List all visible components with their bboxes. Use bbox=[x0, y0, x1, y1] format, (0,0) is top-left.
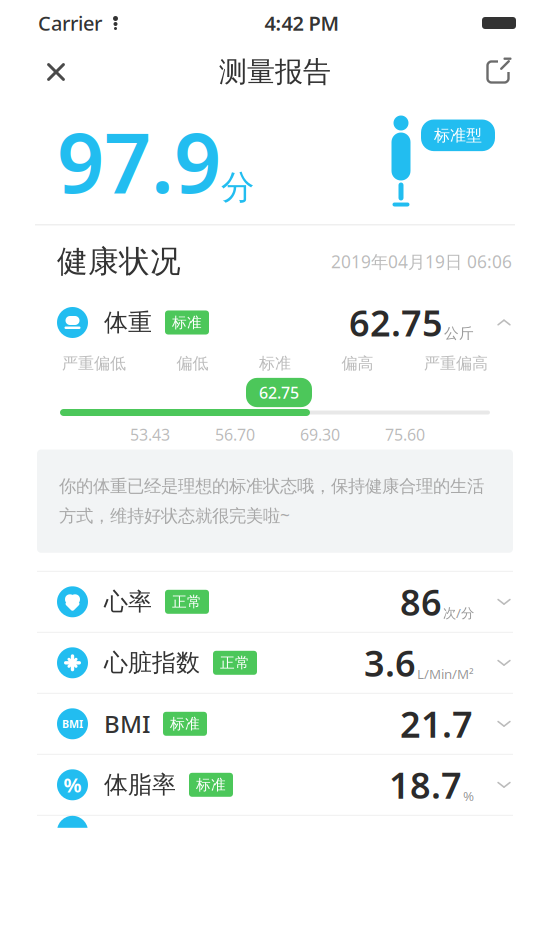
staticText: 偏高 bbox=[341, 354, 373, 373]
staticText: 心率 bbox=[104, 587, 152, 617]
staticText: 体脂率 bbox=[104, 770, 176, 800]
button[interactable]: 关闭 bbox=[33, 49, 79, 95]
staticText: 测量报告 bbox=[219, 55, 331, 89]
staticText: % bbox=[63, 771, 81, 798]
staticText: 标准型 bbox=[434, 125, 482, 145]
staticText: 4:42 PM bbox=[264, 10, 339, 36]
staticText: 62.75 bbox=[349, 299, 443, 346]
staticText: 3.6 bbox=[364, 639, 416, 687]
staticText: BMI bbox=[62, 717, 83, 731]
staticText: 56.70 bbox=[215, 424, 255, 445]
staticText: 次/分 bbox=[443, 604, 474, 622]
staticText: 严重偏低 bbox=[62, 354, 126, 373]
staticText: 2019年04月19日 06:06 bbox=[331, 250, 512, 273]
staticText: 分 bbox=[221, 167, 254, 208]
staticText: 69.30 bbox=[300, 424, 340, 445]
staticText: Carrier bbox=[38, 10, 102, 36]
staticText: 标准 bbox=[170, 715, 200, 733]
staticText: 严重偏高 bbox=[424, 354, 488, 373]
button[interactable]: % bbox=[0, 755, 550, 815]
staticText: 心脏指数 bbox=[104, 648, 200, 678]
staticText: 21.7 bbox=[400, 700, 473, 748]
staticText: 体重 bbox=[104, 308, 152, 337]
button[interactable]: 分享 bbox=[475, 49, 521, 95]
button[interactable]: 心脏指数 bbox=[0, 633, 550, 693]
staticText: 正常 bbox=[172, 593, 202, 611]
staticText: L/Min/M² bbox=[417, 665, 474, 683]
button[interactable]: 体重 bbox=[0, 297, 550, 347]
button[interactable]: BMI bbox=[0, 694, 550, 754]
staticText: 75.60 bbox=[385, 424, 425, 445]
staticText: 你的体重已经是理想的标准状态哦，保持健康合理的生活方式，维持好状态就很完美啦~ bbox=[59, 475, 484, 527]
staticText: 62.75 bbox=[259, 382, 299, 403]
staticText: 标准 bbox=[259, 354, 291, 373]
staticText: 标准 bbox=[196, 776, 226, 794]
staticText: 97.9 bbox=[57, 106, 221, 216]
staticText: 86 bbox=[400, 578, 442, 626]
staticText: 正常 bbox=[220, 654, 250, 672]
staticText: 健康状况 bbox=[57, 243, 181, 280]
staticText: 偏低 bbox=[176, 354, 208, 373]
staticText: 18.7 bbox=[389, 761, 462, 809]
staticText: % bbox=[463, 787, 474, 805]
staticText: 公斤 bbox=[444, 324, 474, 342]
staticText: 标准 bbox=[172, 313, 202, 331]
staticText: 53.43 bbox=[130, 424, 170, 445]
staticText: BMI bbox=[104, 708, 150, 740]
button[interactable]: 心率 bbox=[0, 572, 550, 632]
